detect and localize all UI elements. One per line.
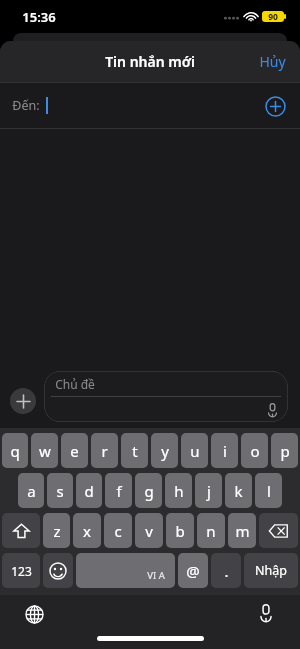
staticText: q: [10, 441, 20, 461]
button[interactable]: o: [241, 433, 268, 468]
button[interactable]: k: [225, 473, 252, 508]
staticText: m: [235, 521, 250, 541]
button[interactable]: m: [228, 513, 256, 548]
button[interactable]: Nhập: [244, 553, 298, 588]
staticText: .: [224, 561, 229, 581]
button[interactable]: z: [43, 513, 70, 548]
button[interactable]: l: [255, 473, 282, 508]
button[interactable]: Change keyboard: [22, 602, 46, 626]
staticText: z: [53, 521, 61, 541]
staticText: o: [250, 441, 260, 461]
staticText: 15:36: [22, 8, 56, 26]
button[interactable]: s: [47, 473, 73, 508]
staticText: g: [144, 481, 154, 501]
staticText: 90: [268, 11, 278, 22]
staticText: r: [101, 441, 108, 461]
button[interactable]: r: [91, 433, 118, 468]
button[interactable]: c: [104, 513, 132, 548]
button[interactable]: Add attachment: [10, 388, 36, 414]
staticText: f: [116, 481, 122, 501]
staticText: j: [207, 481, 211, 501]
button[interactable]: e: [61, 433, 88, 468]
staticText: VI A: [147, 569, 165, 582]
button[interactable]: x: [73, 513, 101, 548]
button[interactable]: Hủy: [245, 44, 300, 79]
staticText: i: [223, 441, 227, 461]
staticText: w: [39, 441, 51, 461]
staticText: Tin nhắn mới: [105, 52, 195, 71]
button[interactable]: Add contact: [262, 93, 288, 119]
button[interactable]: q: [2, 433, 28, 468]
button[interactable]: y: [151, 433, 178, 468]
button[interactable]: f: [105, 473, 132, 508]
staticText: e: [70, 441, 79, 461]
staticText: Nhập: [255, 562, 287, 579]
staticText: @: [186, 561, 200, 581]
button[interactable]: g: [135, 473, 162, 508]
button[interactable]: Dictate: [264, 402, 280, 418]
staticText: t: [132, 441, 138, 461]
button[interactable]: Space: [76, 553, 175, 588]
staticText: v: [145, 521, 153, 541]
button[interactable]: p: [271, 433, 298, 468]
button[interactable]: d: [76, 473, 102, 508]
staticText: Chủ đề: [55, 376, 95, 392]
button[interactable]: Shift: [2, 513, 40, 548]
button[interactable]: j: [195, 473, 222, 508]
button[interactable]: Đến:: [0, 83, 300, 128]
staticText: c: [114, 521, 122, 541]
staticText: u: [190, 441, 200, 461]
button[interactable]: @: [178, 553, 208, 588]
staticText: x: [83, 521, 91, 541]
staticText: a: [27, 481, 36, 501]
button[interactable]: b: [166, 513, 194, 548]
staticText: b: [175, 521, 185, 541]
button[interactable]: h: [165, 473, 192, 508]
button[interactable]: v: [135, 513, 163, 548]
staticText: y: [161, 441, 169, 461]
button[interactable]: u: [181, 433, 208, 468]
button[interactable]: 123: [2, 553, 40, 588]
button[interactable]: i: [211, 433, 238, 468]
staticText: 123: [11, 563, 32, 579]
button[interactable]: Voice input: [254, 601, 278, 625]
staticText: Hủy: [259, 52, 286, 71]
staticText: l: [267, 481, 271, 501]
button[interactable]: Chủ đề: [44, 371, 288, 422]
staticText: d: [84, 481, 94, 501]
staticText: s: [56, 481, 64, 501]
button[interactable]: n: [197, 513, 225, 548]
button[interactable]: a: [18, 473, 44, 508]
button[interactable]: w: [31, 433, 58, 468]
staticText: k: [234, 481, 243, 501]
button[interactable]: Emoji: [43, 553, 73, 588]
staticText: Đến:: [12, 97, 40, 114]
button[interactable]: Backspace: [259, 513, 298, 548]
staticText: p: [280, 441, 290, 461]
button[interactable]: .: [211, 553, 241, 588]
staticText: h: [174, 481, 184, 501]
button[interactable]: t: [121, 433, 148, 468]
staticText: n: [206, 521, 216, 541]
